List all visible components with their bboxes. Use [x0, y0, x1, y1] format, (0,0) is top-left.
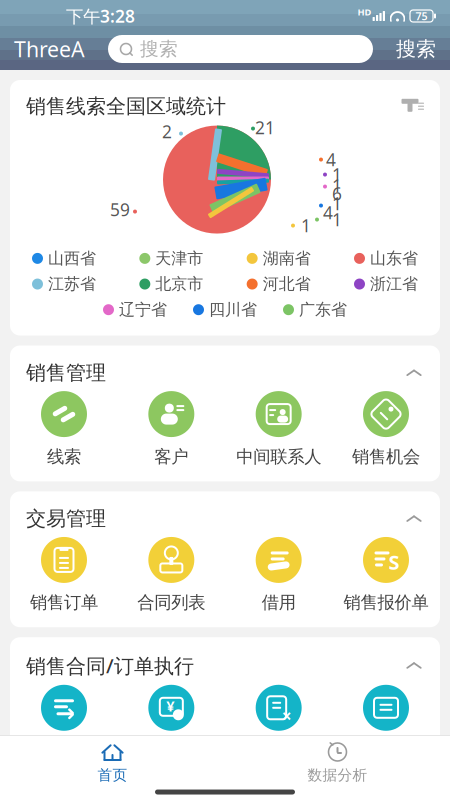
- button[interactable]: 搜索: [108, 35, 373, 63]
- staticText: 2: [162, 120, 172, 143]
- staticText: 辽宁省: [119, 300, 167, 320]
- staticText: 6: [332, 182, 342, 205]
- staticText: 搜索: [140, 37, 178, 60]
- staticText: 21: [255, 116, 275, 139]
- staticText: 搜索: [396, 37, 436, 61]
- staticText: 1: [332, 192, 342, 215]
- staticText: 广东省: [299, 300, 347, 320]
- staticText: 1: [332, 163, 342, 186]
- staticText: 浙江省: [370, 274, 418, 294]
- button[interactable]: S: [336, 537, 436, 613]
- button[interactable]: 合同列表: [121, 537, 221, 613]
- button[interactable]: 销售发货单: [14, 685, 114, 761]
- staticText: ¥: [166, 696, 174, 716]
- staticText: 75: [415, 9, 427, 23]
- staticText: 四川省: [209, 300, 257, 320]
- staticText: 销售订单: [30, 592, 98, 613]
- button[interactable]: 客户: [121, 391, 221, 467]
- staticText: 山东省: [370, 249, 418, 268]
- button[interactable]: ×: [229, 685, 329, 761]
- staticText: 下午3:28: [66, 4, 135, 27]
- button[interactable]: 搜索: [396, 37, 450, 61]
- staticText: 销售管理: [26, 360, 106, 385]
- staticText: 山西省: [48, 249, 96, 268]
- staticText: 交易管理: [26, 506, 106, 531]
- button[interactable]: 销售订单: [14, 537, 114, 613]
- staticText: 销售发货单: [21, 740, 106, 761]
- button[interactable]: Collapse 交易管理: [404, 513, 424, 525]
- staticText: 首页: [97, 766, 127, 784]
- staticText: ThreeA: [14, 35, 85, 63]
- staticText: 销售机会: [352, 446, 420, 467]
- staticText: 4: [323, 201, 333, 224]
- staticText: 1: [332, 174, 342, 197]
- button[interactable]: 借用: [229, 537, 329, 613]
- staticText: 北京市: [155, 274, 203, 294]
- staticText: 数据分析: [307, 766, 367, 784]
- staticText: 湖南省: [263, 249, 311, 268]
- staticText: 1: [301, 214, 311, 237]
- staticText: 线索: [47, 446, 81, 467]
- button[interactable]: 数据分析: [225, 741, 450, 784]
- staticText: S: [388, 549, 399, 575]
- staticText: 1: [332, 208, 342, 231]
- staticText: 合同列表: [137, 592, 205, 613]
- staticText: 借用: [262, 592, 296, 613]
- staticText: 59: [110, 198, 130, 221]
- button[interactable]: 线索: [14, 391, 114, 467]
- staticText: 天津市: [155, 249, 203, 268]
- button[interactable]: 销售机会: [336, 391, 436, 467]
- staticText: 4: [326, 148, 336, 171]
- button[interactable]: 中间联系人: [229, 391, 329, 467]
- staticText: 销售线索全国区域统计: [26, 94, 226, 119]
- button[interactable]: Collapse 销售合同/订单执行: [404, 659, 424, 671]
- staticText: 客户: [154, 446, 188, 467]
- staticText: 江苏省: [48, 274, 96, 294]
- staticText: 销售合同/订单执行: [26, 652, 194, 679]
- button[interactable]: 销售发票: [336, 685, 436, 761]
- button[interactable]: Collapse 销售管理: [404, 367, 424, 379]
- button[interactable]: ¥: [121, 685, 221, 761]
- button[interactable]: 筛选: [396, 95, 424, 117]
- staticText: 中间联系人: [236, 446, 321, 467]
- staticText: 销售报价单: [343, 592, 428, 613]
- button[interactable]: 首页: [0, 741, 225, 784]
- staticText: ×: [282, 704, 292, 727]
- staticText: HD: [358, 6, 372, 18]
- staticText: 河北省: [263, 274, 311, 294]
